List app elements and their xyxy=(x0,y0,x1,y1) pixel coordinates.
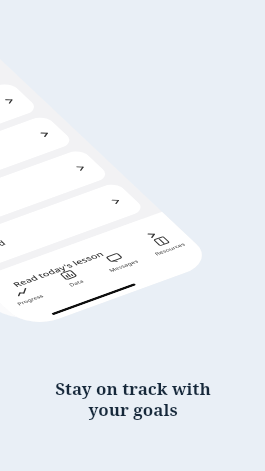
button[interactable]: Nutrition xyxy=(0,114,75,203)
button[interactable]: Data xyxy=(41,263,102,294)
staticText: Read today's lesson xyxy=(10,249,106,289)
staticText: Mood xyxy=(0,238,8,255)
staticText: Progress xyxy=(16,293,45,307)
button[interactable]: Activity xyxy=(0,81,40,170)
staticText: Resources xyxy=(153,242,187,257)
button[interactable]: Messages xyxy=(88,246,149,277)
staticText: Stay on track with your goals xyxy=(55,377,211,421)
staticText: Data xyxy=(67,278,86,288)
staticText: Mindfulness xyxy=(0,194,2,222)
button[interactable]: Read today's lesson xyxy=(0,215,182,304)
button[interactable]: Sleep xyxy=(0,47,4,136)
button[interactable]: Mood xyxy=(0,182,146,270)
button[interactable]: Progress xyxy=(0,280,56,311)
staticText: Messages xyxy=(107,259,141,274)
button[interactable]: Mindfulness xyxy=(0,148,111,237)
button[interactable]: Resources xyxy=(135,229,196,260)
